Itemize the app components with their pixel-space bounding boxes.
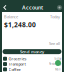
button[interactable]: Coffee	[2, 67, 62, 72]
staticText: Yesterday	[49, 62, 61, 66]
staticText: $1,248.00	[4, 20, 36, 29]
staticText: Groceries	[8, 56, 26, 61]
staticText: Account	[22, 4, 43, 11]
staticText: Mon	[55, 68, 61, 71]
staticText: Transport	[8, 61, 25, 67]
button[interactable]: Groceries	[2, 56, 62, 61]
staticText: Coffee	[8, 67, 20, 72]
staticText: Balance	[4, 14, 18, 19]
staticText: See all	[49, 41, 60, 46]
button[interactable]: Transport	[2, 61, 62, 67]
button[interactable]: Back	[2, 4, 8, 11]
button[interactable]: Profile	[57, 5, 62, 10]
staticText: Send money	[20, 49, 44, 54]
button[interactable]: Send money	[2, 49, 61, 54]
staticText: Today	[54, 57, 61, 60]
button[interactable]: New	[55, 60, 61, 66]
staticText: Today	[50, 14, 60, 19]
